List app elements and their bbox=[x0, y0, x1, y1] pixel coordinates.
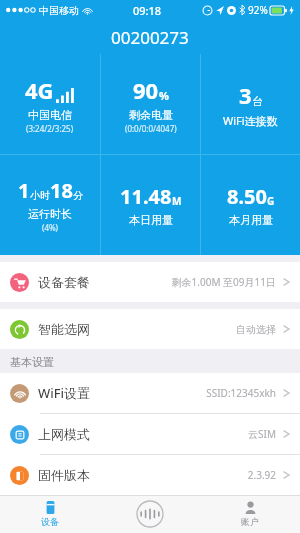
staticText: 11.48 bbox=[120, 183, 172, 210]
button[interactable]: WiFi设置 bbox=[0, 373, 300, 413]
staticText: 2.3.92 bbox=[247, 468, 276, 482]
staticText: SSID:12345xkh bbox=[206, 386, 276, 400]
button[interactable]: 90 bbox=[101, 54, 200, 154]
staticText: 4G bbox=[25, 75, 54, 105]
staticText: 分 bbox=[73, 189, 83, 202]
staticText: M bbox=[172, 194, 182, 208]
button[interactable]: 设备套餐 bbox=[0, 262, 300, 302]
button[interactable]: 11.48 bbox=[101, 155, 200, 255]
staticText: 设备 bbox=[41, 516, 59, 527]
button[interactable]: 设备 bbox=[0, 495, 100, 533]
staticText: 中国电信 bbox=[28, 108, 72, 122]
staticText: 台 bbox=[252, 94, 263, 108]
staticText: (0:0/0:0/4047) bbox=[125, 123, 177, 134]
staticText: 00200273 bbox=[111, 26, 189, 49]
staticText: 基本设置 bbox=[10, 355, 54, 369]
staticText: % bbox=[159, 88, 169, 103]
staticText: 小时 bbox=[30, 189, 50, 202]
button[interactable]: 8.50 bbox=[201, 155, 300, 255]
staticText: WiFi连接数 bbox=[223, 113, 278, 128]
staticText: 本月用量 bbox=[229, 213, 273, 227]
staticText: WiFi设置 bbox=[38, 384, 91, 402]
staticText: 90 bbox=[133, 75, 159, 105]
button[interactable]: 1 bbox=[0, 155, 100, 255]
staticText: 本日用量 bbox=[129, 213, 173, 227]
button[interactable]: Scan device bbox=[100, 495, 200, 533]
staticText: 剩余电量 bbox=[129, 108, 173, 122]
staticText: 92% bbox=[248, 3, 268, 17]
staticText: 自动选择 bbox=[236, 323, 276, 336]
button[interactable]: 账户 bbox=[200, 495, 300, 533]
staticText: 设备套餐 bbox=[38, 274, 90, 290]
staticText: 09:18 bbox=[133, 3, 162, 18]
staticText: (4%) bbox=[42, 222, 59, 233]
staticText: G bbox=[267, 194, 275, 208]
staticText: 中国移动 bbox=[39, 4, 79, 17]
staticText: 3 bbox=[239, 80, 252, 110]
button[interactable]: 3 bbox=[201, 54, 300, 154]
staticText: 上网模式 bbox=[38, 426, 90, 442]
staticText: 智能选网 bbox=[38, 321, 90, 337]
button[interactable]: 固件版本 bbox=[0, 455, 300, 495]
button[interactable]: 上网模式 bbox=[0, 414, 300, 454]
staticText: 1 bbox=[18, 177, 30, 204]
staticText: 18 bbox=[50, 177, 73, 204]
button[interactable]: 智能选网 bbox=[0, 309, 300, 349]
staticText: 剩余1.00M 至09月11日 bbox=[171, 275, 276, 289]
staticText: 固件版本 bbox=[38, 467, 90, 483]
staticText: 运行时长 bbox=[28, 207, 72, 221]
staticText: (3:24/2/3:25) bbox=[26, 123, 74, 134]
staticText: 账户 bbox=[241, 516, 259, 527]
button[interactable]: 4G bbox=[0, 54, 100, 154]
staticText: 8.50 bbox=[227, 183, 267, 210]
staticText: 云SIM bbox=[248, 427, 276, 441]
